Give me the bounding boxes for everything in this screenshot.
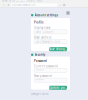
staticText: History	[20, 0, 25, 2]
button[interactable]: Account	[66, 11, 70, 15]
button[interactable]: Update password	[49, 86, 67, 90]
staticText: Bookmarks	[26, 0, 35, 2]
staticText: Current password	[34, 64, 58, 68]
staticText: ••••••••	[35, 78, 43, 82]
staticText: ↻	[7, 3, 9, 6]
staticText: app.example.com/settings/account	[12, 4, 35, 6]
staticText: Password	[34, 59, 47, 63]
staticText: New password	[34, 74, 52, 78]
staticText: Save changes	[49, 47, 67, 51]
staticText: ••••••••	[35, 69, 43, 72]
staticText: ›	[5, 3, 6, 7]
staticText: Display name	[34, 26, 51, 29]
button[interactable]: Save changes	[49, 47, 67, 51]
staticText: Jane Cooper	[35, 30, 53, 34]
staticText: View	[16, 0, 19, 2]
staticText: ‹	[3, 3, 4, 7]
staticText: Chrome	[1, 0, 7, 2]
staticText: Profile	[34, 21, 44, 24]
staticText: ⋯	[59, 3, 62, 6]
staticText: Account settings	[35, 13, 58, 17]
staticText: Update password	[49, 86, 67, 89]
staticText: Security	[35, 53, 45, 56]
staticText: Danger zone	[31, 92, 49, 95]
staticText: jane@example.com	[35, 40, 59, 43]
staticText: Email address	[34, 36, 51, 39]
staticText: File	[9, 0, 11, 2]
staticText: Window	[37, 0, 42, 2]
